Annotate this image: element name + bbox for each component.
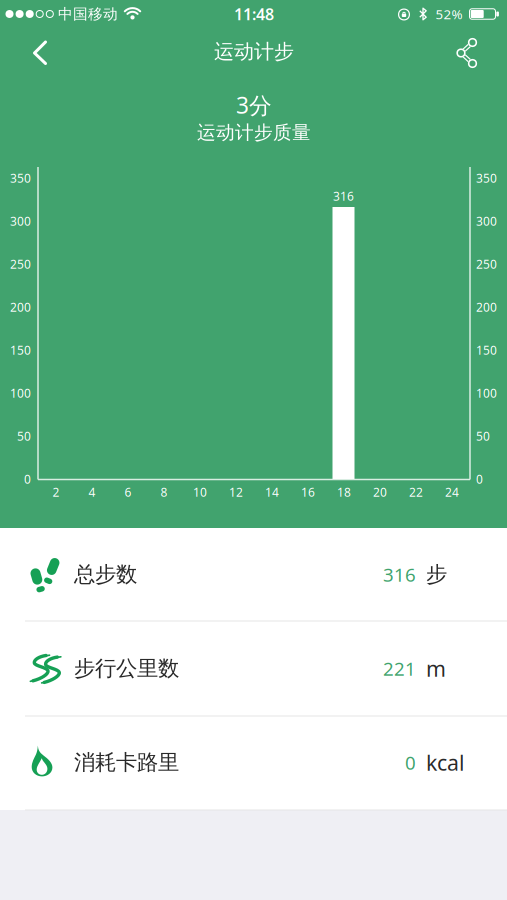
staticText: 22 [409,484,423,500]
staticText: 200 [476,299,497,315]
staticText: 0 [405,750,416,775]
staticText: 6 [124,484,131,500]
staticText: 4 [88,484,95,500]
staticText: 221 [383,656,416,681]
staticText: 24 [445,484,459,500]
staticText: 中国移动 [58,5,118,23]
staticText: 250 [476,256,497,272]
staticText: 16 [301,484,315,500]
staticText: 200 [10,299,31,315]
staticText: 20 [373,484,387,500]
staticText: 运动计步质量 [197,121,311,144]
staticText: 52% [435,5,462,23]
staticText: 运动计步 [214,39,294,64]
staticText: 11:48 [234,3,274,25]
staticText: 10 [193,484,207,500]
staticText: 350 [10,170,31,186]
staticText: 150 [10,342,31,358]
button[interactable]: Back [20,33,60,73]
staticText: 150 [476,342,497,358]
button[interactable]: Share [444,30,488,74]
staticText: 步 [426,561,447,588]
staticText: 316 [333,188,354,204]
staticText: 250 [10,256,31,272]
staticText: 3分 [236,90,272,120]
staticText: 350 [476,170,497,186]
staticText: 14 [265,484,279,500]
staticText: 50 [476,428,490,444]
staticText: 消耗卡路里 [74,749,179,776]
staticText: m [426,654,446,683]
staticText: 50 [17,428,31,444]
staticText: 300 [476,213,497,229]
staticText: 0 [476,471,483,487]
staticText: 18 [337,484,351,500]
staticText: 100 [476,385,497,401]
staticText: 步行公里数 [74,655,179,682]
staticText: 316 [383,562,416,587]
staticText: 12 [229,484,243,500]
staticText: 总步数 [74,561,137,588]
staticText: 100 [10,385,31,401]
staticText: kcal [426,748,465,777]
staticText: 300 [10,213,31,229]
staticText: 8 [160,484,167,500]
staticText: 2 [52,484,59,500]
staticText: 0 [24,471,31,487]
